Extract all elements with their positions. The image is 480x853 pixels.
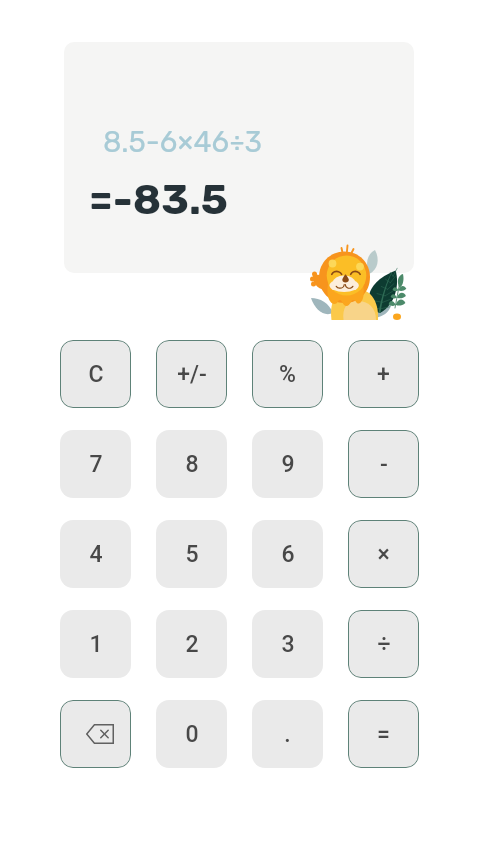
staticText: +/- <box>177 361 207 388</box>
button[interactable]: 6 <box>252 520 323 588</box>
button[interactable]: × <box>348 520 419 588</box>
staticText: 8 <box>185 451 199 478</box>
button[interactable]: = <box>348 700 419 768</box>
staticText: ÷ <box>377 631 391 658</box>
staticText: 4 <box>89 541 103 568</box>
button[interactable]: . <box>252 700 323 768</box>
staticText: 1 <box>89 631 103 658</box>
button[interactable]: - <box>348 430 419 498</box>
staticText: 6 <box>281 541 295 568</box>
staticText: 3 <box>281 631 295 658</box>
button[interactable]: % <box>252 340 323 408</box>
staticText: - <box>380 451 388 478</box>
staticText: C <box>88 361 104 388</box>
staticText: + <box>377 361 390 388</box>
button[interactable]: 5 <box>156 520 227 588</box>
button[interactable]: 2 <box>156 610 227 678</box>
staticText: 9 <box>281 451 295 478</box>
staticText: = <box>377 721 390 748</box>
button[interactable]: 0 <box>156 700 227 768</box>
staticText: 5 <box>185 541 199 568</box>
button[interactable]: 4 <box>60 520 131 588</box>
button[interactable]: +/- <box>156 340 227 408</box>
staticText: 0 <box>185 721 199 748</box>
button[interactable]: C <box>60 340 131 408</box>
button[interactable]: 7 <box>60 430 131 498</box>
staticText: 8.5-6×46÷3 <box>103 125 262 159</box>
button[interactable]: 1 <box>60 610 131 678</box>
staticText: % <box>279 361 296 388</box>
staticText: =-83.5 <box>89 175 228 225</box>
staticText: . <box>284 721 291 748</box>
button[interactable]: Backspace <box>60 700 131 768</box>
button[interactable]: 3 <box>252 610 323 678</box>
button[interactable]: 9 <box>252 430 323 498</box>
button[interactable]: ÷ <box>348 610 419 678</box>
staticText: 7 <box>89 451 103 478</box>
button[interactable]: 8 <box>156 430 227 498</box>
staticText: × <box>377 541 390 568</box>
staticText: 2 <box>185 631 199 658</box>
button[interactable]: + <box>348 340 419 408</box>
